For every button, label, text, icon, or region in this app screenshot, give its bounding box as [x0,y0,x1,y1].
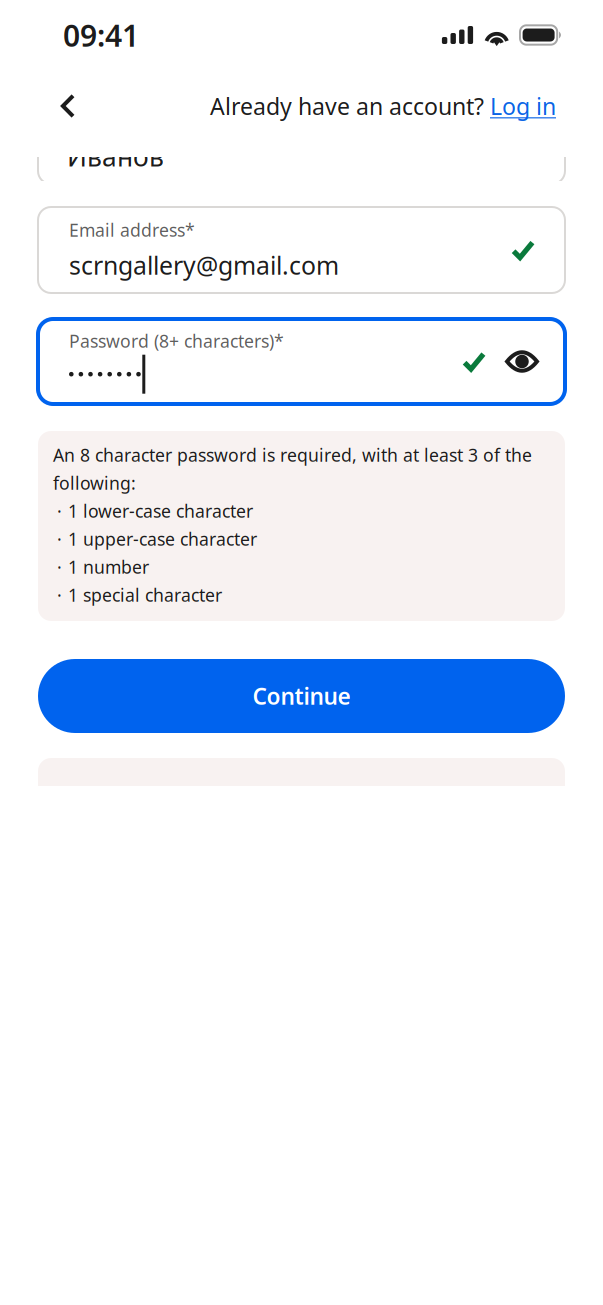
staticText: Continue [252,681,350,711]
button[interactable]: Back [41,78,95,134]
staticText: Sign in with SSO [210,779,392,811]
staticText: Email address* [69,218,195,242]
staticText: Иванов [67,139,164,174]
button[interactable]: Sign in with SSO [0,758,603,832]
staticText: Already have an account? [210,91,490,121]
staticText: scrngallery@gmail.com [69,249,339,282]
button[interactable]: Continue [38,659,565,733]
staticText: following: [53,471,136,495]
button[interactable]: Log in [490,91,556,121]
staticText: Log in [490,91,556,121]
staticText: 09:41 [63,15,139,55]
button[interactable]: Show password [505,349,539,373]
staticText: · 1 special character [57,583,222,607]
staticText: An 8 character password is required, wit… [53,443,532,467]
staticText: · 1 number [57,555,149,579]
staticText: Фамилия* [67,108,157,132]
staticText: · 1 upper-case character [57,527,257,551]
staticText: · 1 lower-case character [57,499,253,523]
staticText: Password (8+ characters)* [69,329,284,353]
